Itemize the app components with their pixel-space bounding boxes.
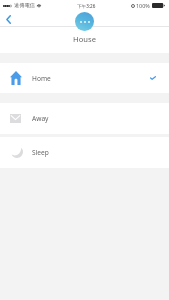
staticText: Away (32, 114, 49, 123)
staticText: Home (32, 74, 51, 83)
button[interactable] (0, 103, 169, 134)
staticText: 遠傳電信 (14, 2, 35, 9)
staticText: 下午3:26 (77, 3, 96, 9)
button[interactable] (0, 63, 169, 93)
staticText: Sleep (32, 148, 49, 157)
staticText: House (73, 34, 96, 44)
button[interactable] (0, 137, 169, 168)
staticText: 100% (136, 2, 150, 9)
button[interactable]: House avatar (75, 12, 94, 31)
button[interactable]: Back (0, 11, 16, 27)
